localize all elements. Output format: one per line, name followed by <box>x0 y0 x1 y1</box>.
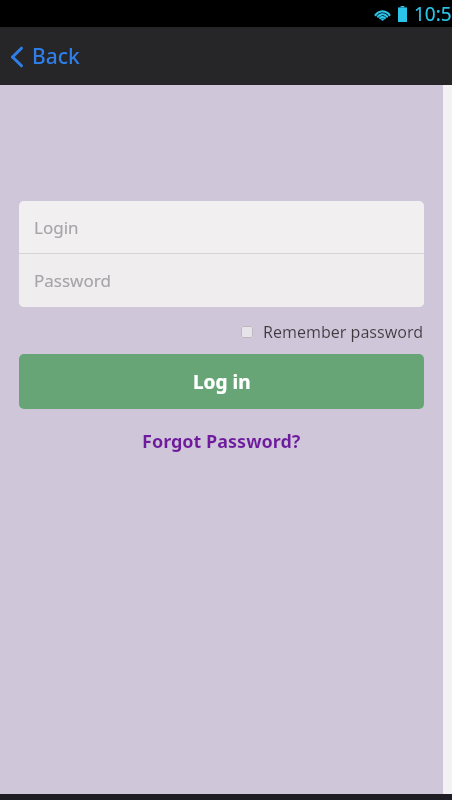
button[interactable]: Forgot Password? <box>130 425 313 458</box>
staticText: Back <box>32 42 80 71</box>
button[interactable]: Back <box>0 34 96 79</box>
staticText: Remember password <box>263 321 424 343</box>
staticText: Password <box>34 269 111 292</box>
staticText: Login <box>34 216 79 239</box>
button[interactable]: Login <box>19 201 424 253</box>
other: Back <box>10 46 24 68</box>
button[interactable]: Password <box>19 254 424 307</box>
button[interactable]: Remember password <box>241 318 424 346</box>
staticText: 10:5 <box>414 1 452 27</box>
staticText: Log in <box>193 369 251 395</box>
staticText: Forgot Password? <box>142 429 301 454</box>
button[interactable]: Log in <box>19 354 424 409</box>
